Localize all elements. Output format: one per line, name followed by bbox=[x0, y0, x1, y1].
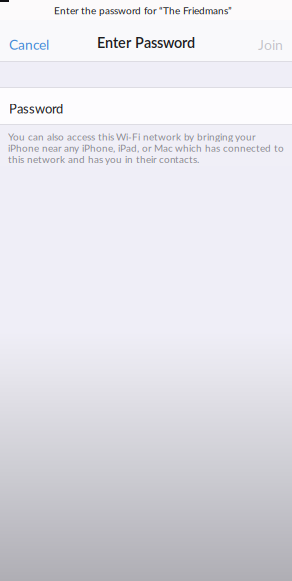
staticText: Password bbox=[9, 101, 63, 116]
staticText: Enter Password bbox=[97, 34, 195, 51]
button[interactable]: Join bbox=[249, 20, 292, 61]
staticText: Join bbox=[258, 36, 283, 53]
staticText: Enter the password for “The Friedmans” bbox=[54, 4, 232, 16]
button[interactable]: Password bbox=[0, 88, 292, 124]
staticText: Cancel bbox=[9, 36, 49, 53]
staticText: You can also access this Wi-Fi network b… bbox=[8, 131, 284, 165]
button[interactable]: Cancel bbox=[0, 20, 58, 61]
